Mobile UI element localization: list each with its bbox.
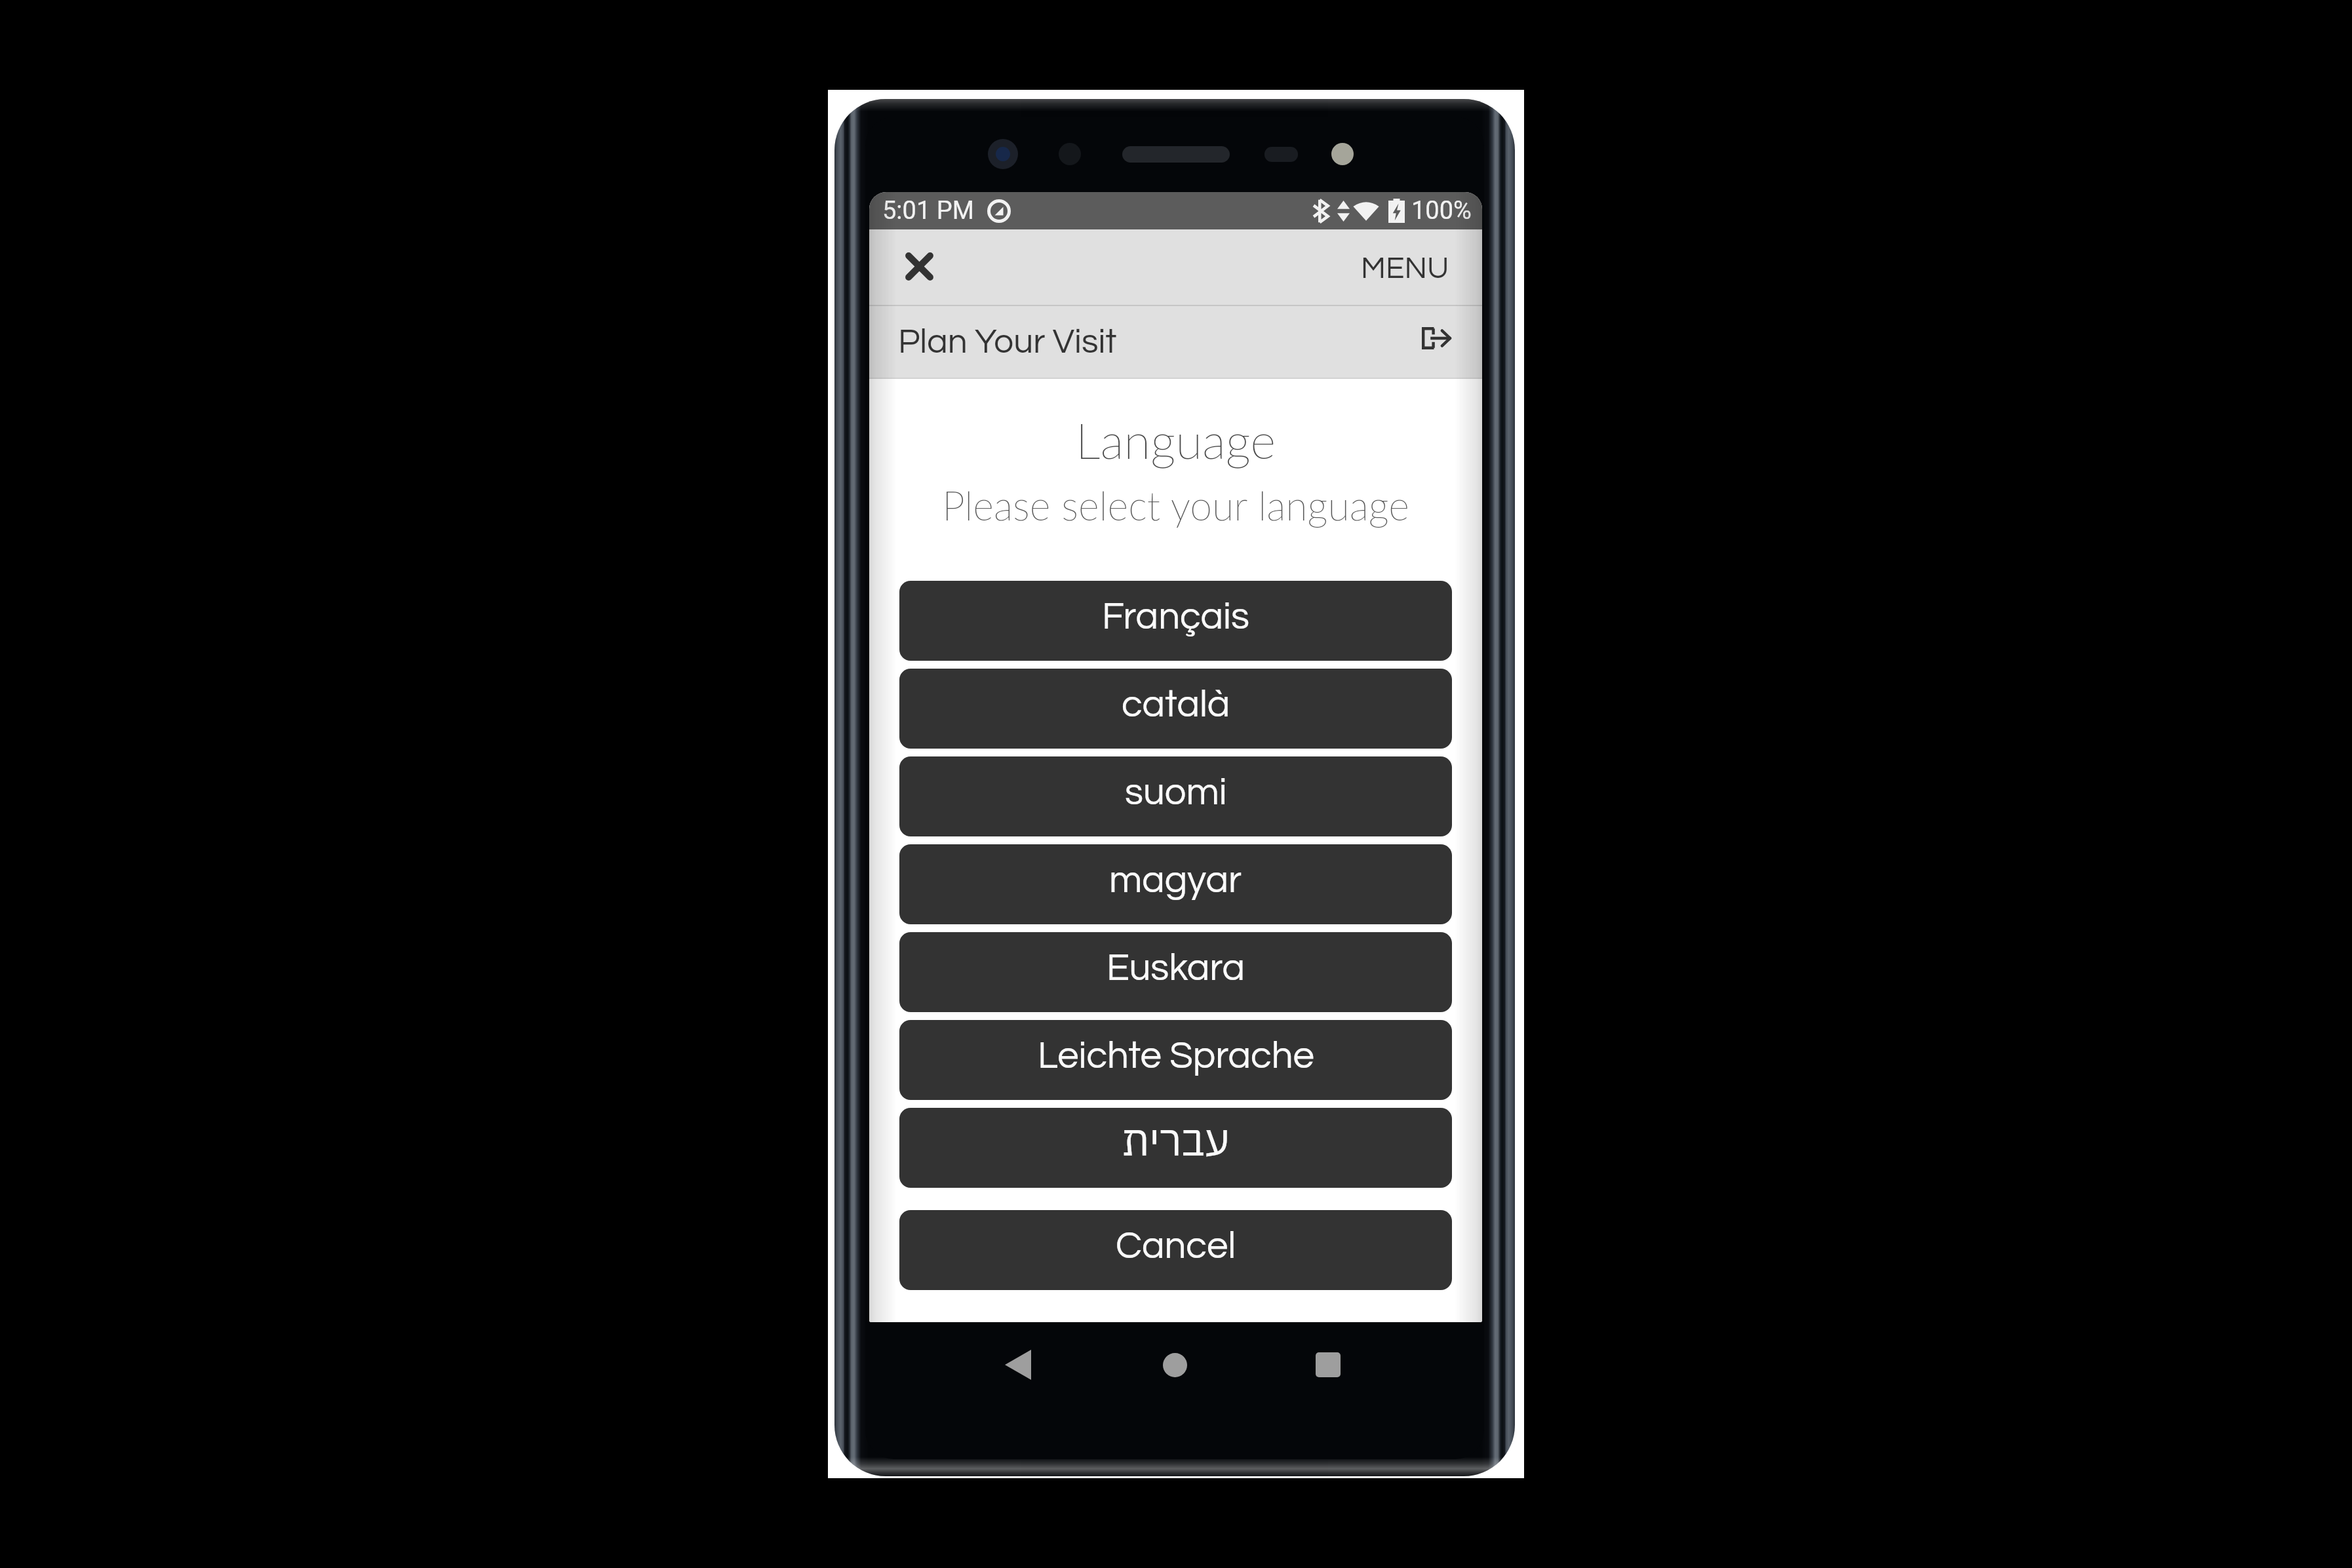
button[interactable]: MENU	[1328, 238, 1482, 298]
staticText: עברית	[1122, 1112, 1230, 1167]
button[interactable]: Français	[899, 581, 1452, 661]
staticText: Cancel	[1116, 1226, 1236, 1266]
button[interactable]: magyar	[899, 844, 1452, 924]
button[interactable]: Euskara	[899, 932, 1452, 1012]
staticText: català	[1122, 685, 1230, 724]
button[interactable]: Leichte Sprache	[899, 1020, 1452, 1100]
button[interactable]: עברית	[899, 1108, 1452, 1188]
staticText: Français	[1102, 597, 1249, 637]
staticText: Euskara	[1107, 949, 1245, 988]
staticText: Language	[869, 410, 1482, 469]
staticText: Please select your language	[869, 481, 1482, 529]
staticText: Leichte Sprache	[1038, 1036, 1314, 1076]
button[interactable]: Cancel	[899, 1210, 1452, 1290]
button[interactable]: Recents	[1305, 1342, 1351, 1388]
staticText: 100%	[1411, 196, 1472, 225]
staticText: magyar	[1109, 861, 1242, 900]
staticText: MENU	[1361, 252, 1449, 284]
button[interactable]: Back	[995, 1342, 1041, 1388]
staticText: suomi	[1125, 773, 1227, 812]
button[interactable]: suomi	[899, 756, 1452, 836]
staticText: Plan Your Visit	[898, 324, 1117, 361]
button[interactable]: Close	[893, 241, 945, 292]
button[interactable]: català	[899, 669, 1452, 749]
button[interactable]: Home	[1152, 1342, 1198, 1388]
staticText: 5:01 PM	[882, 196, 974, 225]
button[interactable]: Exit	[1415, 317, 1457, 359]
